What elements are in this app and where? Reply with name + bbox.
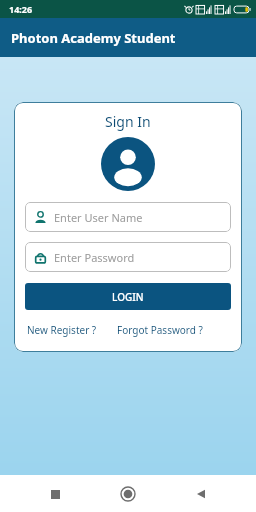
staticText: 14:26 bbox=[9, 3, 33, 15]
staticText: LOGIN bbox=[112, 290, 144, 304]
staticText: Photon Academy Student bbox=[11, 29, 176, 47]
button[interactable]: Enter User Name bbox=[25, 202, 231, 232]
button[interactable]: Recent apps bbox=[37, 476, 73, 512]
staticText: New Register ? bbox=[27, 323, 97, 337]
staticText: Enter User Name bbox=[54, 210, 143, 225]
button[interactable]: Back bbox=[183, 476, 219, 512]
button[interactable]: Enter Password bbox=[25, 242, 231, 272]
button[interactable]: Home bbox=[110, 476, 146, 512]
button[interactable]: LOGIN bbox=[25, 283, 231, 310]
staticText: Enter Password bbox=[54, 250, 135, 265]
staticText: Forgot Password ? bbox=[117, 323, 203, 337]
button[interactable]: New Register ? bbox=[25, 321, 99, 339]
staticText: Sign In bbox=[105, 112, 151, 131]
button[interactable]: Forgot Password ? bbox=[115, 321, 205, 339]
